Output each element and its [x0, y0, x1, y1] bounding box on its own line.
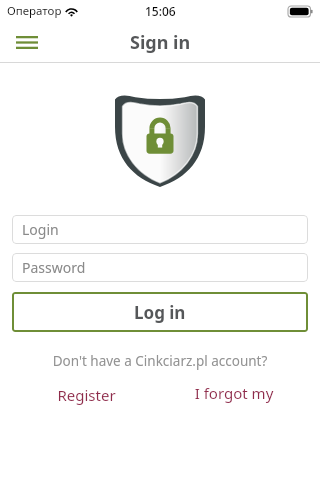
staticText: Sign in — [130, 30, 191, 55]
staticText: 15:06 — [145, 3, 176, 19]
button[interactable]: Login — [12, 215, 308, 244]
staticText: Password — [22, 258, 86, 277]
staticText: Log in — [134, 301, 186, 324]
staticText: Don't have a Cinkciarz.pl account? — [0, 352, 320, 370]
staticText: Register — [57, 385, 116, 405]
staticText: Оператор — [7, 3, 62, 19]
button[interactable]: I forgot my password — [160, 383, 308, 407]
button[interactable]: Menu — [10, 27, 44, 57]
button[interactable]: Password — [12, 253, 308, 282]
button[interactable]: Register — [12, 383, 160, 407]
button[interactable]: Log in — [12, 292, 308, 332]
staticText: Login — [22, 220, 59, 239]
staticText: I forgot my password — [160, 383, 308, 407]
